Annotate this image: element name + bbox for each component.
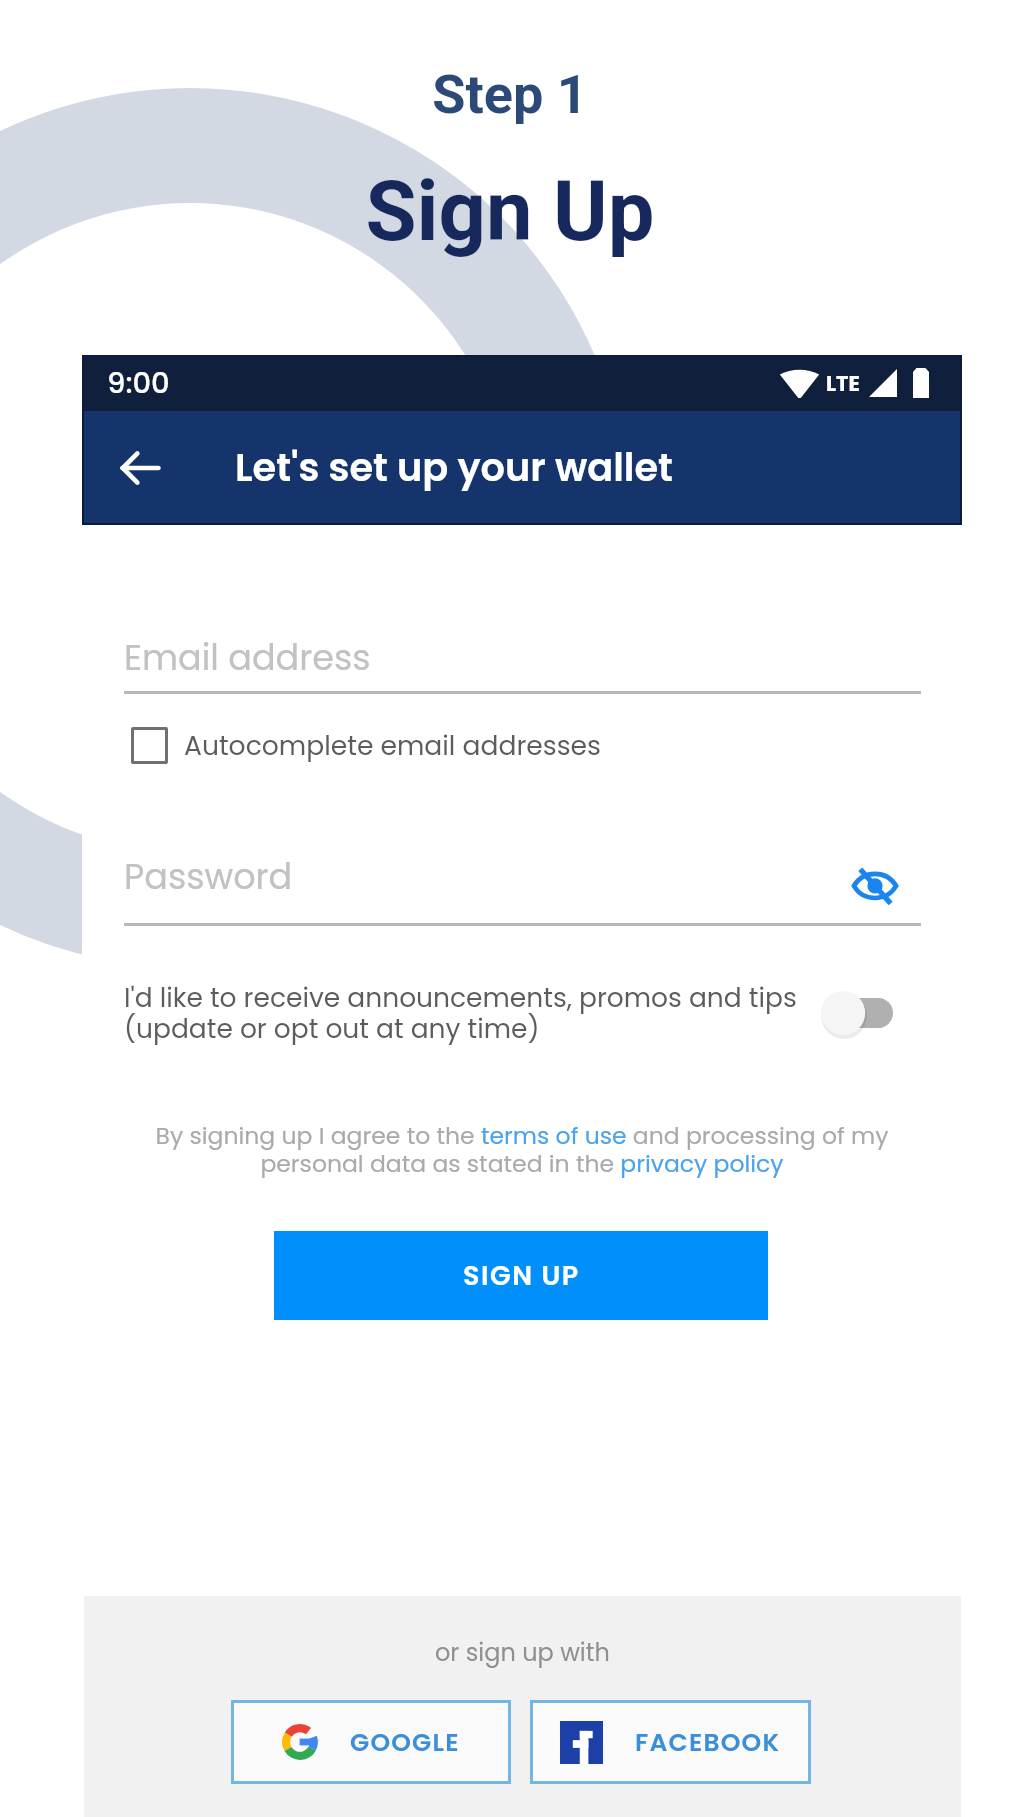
button[interactable]: Password [124,846,824,926]
button[interactable]: Show password [847,857,903,913]
staticText: Autocomplete email addresses [184,727,601,764]
staticText: I'd like to receive announcements, promo… [124,979,797,1047]
staticText: Let's set up your wallet [235,441,673,495]
staticText: SIGN UP [463,1257,580,1295]
staticText: By signing up I agree to the terms of us… [150,1119,894,1180]
button[interactable]: SIGN UP [274,1231,768,1320]
staticText: 9:00 [107,363,170,404]
button[interactable]: Autocomplete email addresses [124,722,614,768]
button[interactable]: GOOGLE [231,1700,511,1784]
staticText: GOOGLE [350,1725,460,1760]
staticText: LTE [826,369,860,398]
button[interactable]: FACEBOOK [530,1700,811,1784]
staticText: Step 1 [0,63,1020,126]
button[interactable]: Email address [124,627,921,694]
staticText: Password [124,852,293,901]
staticText: Email address [124,633,371,682]
button[interactable]: Receive announcements [821,990,893,1036]
staticText: FACEBOOK [635,1725,781,1760]
staticText: or sign up with [435,1636,610,1670]
button[interactable]: Back [104,432,176,504]
staticText: Sign Up [0,163,1020,260]
